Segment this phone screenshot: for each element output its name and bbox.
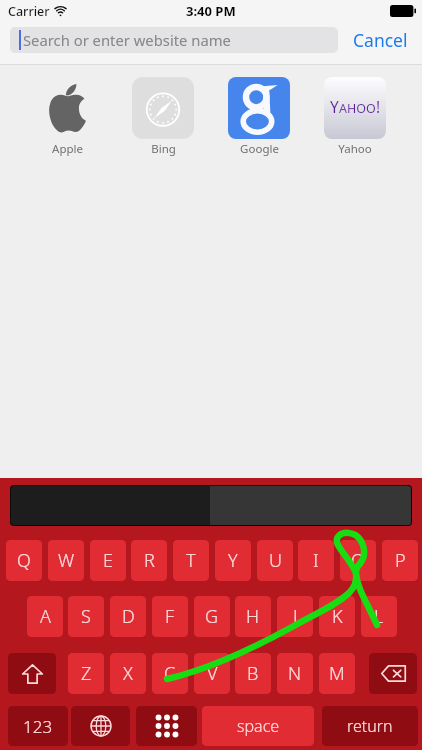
button[interactable]: Backspace [369, 653, 417, 694]
button[interactable]: C [152, 653, 188, 694]
staticText: G [205, 604, 219, 629]
button[interactable]: space [202, 706, 314, 746]
button[interactable]: Bing [132, 77, 194, 157]
button[interactable]: O [340, 540, 376, 581]
button[interactable]: M [319, 653, 355, 694]
button[interactable]: Google [228, 77, 290, 157]
staticText: H [246, 604, 260, 629]
button[interactable]: X [110, 653, 146, 694]
staticText: I [313, 548, 319, 573]
staticText: S [81, 604, 91, 629]
button[interactable]: P [382, 540, 418, 581]
button[interactable]: K [319, 596, 355, 637]
button[interactable]: Search or enter website name [10, 27, 338, 53]
button[interactable]: F [152, 596, 188, 637]
staticText: Carrier [8, 3, 50, 20]
button[interactable]: Q [6, 540, 42, 581]
staticText: Cancel [353, 28, 408, 52]
staticText: Q [17, 548, 31, 573]
button[interactable]: S [68, 596, 104, 637]
staticText: A [40, 604, 51, 629]
staticText: X [123, 661, 133, 686]
button[interactable]: G [194, 596, 230, 637]
staticText: Z [81, 661, 92, 686]
staticText: 123 [23, 715, 53, 738]
button[interactable]: A [27, 596, 63, 637]
staticText: T [186, 548, 196, 573]
button[interactable]: I [298, 540, 334, 581]
button[interactable]: 123 [8, 706, 68, 746]
staticText: O [351, 548, 365, 573]
staticText: Y [228, 548, 238, 573]
button[interactable]: Keyboard layout [136, 706, 197, 746]
staticText: L [374, 604, 384, 629]
staticText: P [395, 548, 406, 573]
button[interactable]: R [131, 540, 167, 581]
staticText: V [207, 661, 218, 686]
button[interactable]: E [90, 540, 126, 581]
button[interactable]: B [235, 653, 271, 694]
staticText: space [237, 715, 280, 737]
staticText: R [144, 548, 155, 573]
button[interactable]: Apple [36, 77, 98, 157]
staticText: ! [376, 96, 381, 117]
button[interactable]: Y [215, 540, 251, 581]
staticText: D [122, 604, 135, 629]
button[interactable]: Shift [8, 653, 56, 694]
staticText: Apple [52, 141, 83, 157]
staticText: Search or enter website name [23, 30, 231, 50]
staticText: 3:40 PM [186, 2, 236, 20]
button[interactable]: Y [324, 77, 386, 157]
staticText: Y [330, 96, 339, 117]
button[interactable]: D [110, 596, 146, 637]
staticText: N [288, 661, 302, 686]
staticText: K [332, 604, 343, 629]
staticText: W [58, 548, 75, 573]
button[interactable]: H [235, 596, 271, 637]
staticText: F [165, 604, 175, 629]
button[interactable]: return [322, 706, 418, 746]
button[interactable]: W [48, 540, 84, 581]
button[interactable]: N [277, 653, 313, 694]
button[interactable]: T [173, 540, 209, 581]
button[interactable]: Cancel [348, 25, 412, 55]
button[interactable]: U [257, 540, 293, 581]
staticText: E [103, 548, 113, 573]
button[interactable]: L [361, 596, 397, 637]
staticText: Yahoo [338, 141, 372, 157]
staticText: J [293, 604, 298, 629]
staticText: Bing [151, 141, 176, 157]
button[interactable]: V [194, 653, 230, 694]
staticText: B [247, 661, 259, 686]
button[interactable]: J [277, 596, 313, 637]
staticText: Google [240, 141, 279, 157]
staticText: C [164, 661, 176, 686]
staticText: M [329, 661, 345, 686]
staticText: U [269, 548, 282, 573]
staticText: return [347, 715, 393, 737]
button[interactable]: Z [68, 653, 104, 694]
staticText: AHOO [339, 100, 376, 117]
button[interactable]: Switch language [71, 706, 130, 746]
